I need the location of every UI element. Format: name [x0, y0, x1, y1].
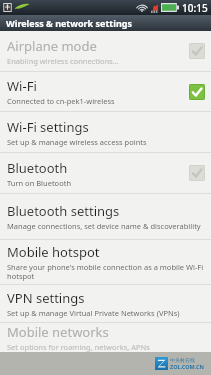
staticText: Wireless & network settings [6, 17, 132, 29]
staticText: Turn on Bluetooth [7, 178, 72, 188]
staticText: Manage connections, set device name & di… [7, 221, 201, 231]
staticText: Bluetooth [7, 159, 68, 177]
button[interactable]: Disabled [189, 43, 205, 59]
other: Battery [161, 3, 179, 12]
other: Notification [2, 2, 13, 13]
button[interactable]: VPN settings [0, 285, 211, 322]
staticText: Set up & manage wireless access points [7, 137, 147, 147]
staticText: ZOL.COM.CN [170, 363, 205, 370]
staticText: Connected to cn-pek1-wireless [7, 96, 115, 106]
button[interactable]: Mobile networks [0, 323, 211, 352]
button[interactable]: Bluetooth [0, 153, 211, 193]
button[interactable]: Bluetooth settings [0, 194, 211, 239]
staticText: Bluetooth settings [7, 202, 120, 220]
button[interactable]: Mobile hotspot [0, 240, 211, 284]
staticText: Set up & manage Virtual Private Networks… [7, 308, 180, 318]
staticText: 中关村在线 [170, 357, 195, 363]
staticText: Share your phone's mobile connection as … [7, 262, 205, 281]
button[interactable]: Disabled [189, 165, 205, 181]
button[interactable]: Wi-Fi [0, 72, 211, 111]
staticText: Airplane mode [7, 37, 97, 55]
staticText: Set options for roaming, networks, APNs [7, 342, 150, 352]
staticText: Wi-Fi settings [7, 118, 89, 136]
button[interactable]: Wi-Fi settings [0, 112, 211, 152]
staticText: Mobile hotspot [7, 243, 100, 261]
staticText: Enabling wireless connections… [7, 56, 119, 66]
staticText: 10:15 [182, 1, 208, 15]
other: Wi-Fi signal [136, 3, 148, 13]
staticText: Wi-Fi [7, 77, 37, 95]
other: Mobile signal [151, 3, 159, 13]
button[interactable]: Enabled [189, 84, 205, 100]
staticText: VPN settings [7, 289, 85, 307]
button[interactable]: Airplane mode [0, 31, 211, 71]
staticText: Mobile networks [7, 323, 109, 341]
